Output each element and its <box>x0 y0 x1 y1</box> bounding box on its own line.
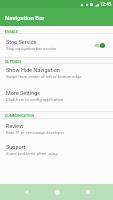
button[interactable]: More Settings <box>0 90 113 110</box>
button[interactable]: Home <box>47 184 68 200</box>
button[interactable]: Recent apps <box>77 184 98 200</box>
staticText: Navigation Bar <box>5 14 45 21</box>
staticText: Show Hide Navigation <box>6 67 60 73</box>
button[interactable]: Support <box>0 144 113 164</box>
button[interactable]: Stop Service <box>0 39 113 59</box>
staticText: Rate 5* to encourage developer <box>6 130 65 135</box>
staticText: Click here to config application <box>6 97 64 102</box>
staticText: Stop navigation bar service <box>6 46 57 51</box>
staticText: Some problems when using <box>6 151 58 156</box>
staticText: SETTINGS <box>5 60 22 64</box>
staticText: 12:45 <box>100 2 112 7</box>
button[interactable]: Review <box>0 123 113 143</box>
button[interactable]: Show Hide Navigation <box>0 67 113 87</box>
staticText: More Settings <box>6 90 41 96</box>
staticText: Stop Service <box>6 39 37 45</box>
staticText: Review <box>6 123 24 129</box>
button[interactable]: Back <box>16 184 37 200</box>
staticText: ENABLE <box>5 30 18 34</box>
staticText: Support <box>6 144 26 150</box>
staticText: Swipe from center of left or bottom edge <box>6 74 82 79</box>
staticText: COMMUNICATION <box>5 114 34 118</box>
